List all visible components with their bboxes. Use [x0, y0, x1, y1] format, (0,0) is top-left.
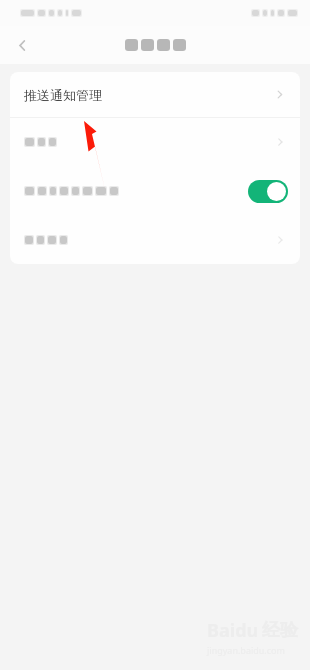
button[interactable]	[10, 216, 300, 264]
button[interactable]: Toggle push setting	[248, 180, 288, 203]
staticText: 推送通知管理	[24, 87, 102, 103]
button[interactable]: Back	[0, 26, 44, 64]
button[interactable]: Toggle push setting	[10, 166, 300, 216]
staticText: 经验	[262, 619, 298, 642]
button[interactable]	[10, 118, 300, 166]
button[interactable]: 推送通知管理	[10, 72, 300, 117]
